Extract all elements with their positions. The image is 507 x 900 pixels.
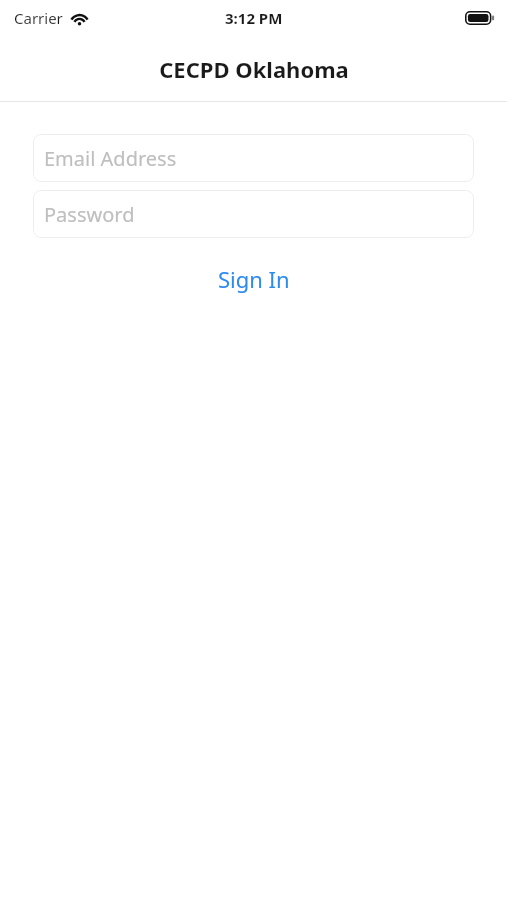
staticText: Sign In <box>218 264 290 294</box>
button[interactable]: Sign In <box>208 260 300 298</box>
staticText: Email Address <box>44 145 177 172</box>
button[interactable]: Password <box>33 190 474 238</box>
staticText: 3:12 PM <box>225 8 283 28</box>
button[interactable]: Email Address <box>33 134 474 182</box>
other: Wi-Fi signal <box>70 11 89 25</box>
staticText: Password <box>44 201 135 228</box>
staticText: CECPD Oklahoma <box>159 54 349 84</box>
other: Battery full <box>465 11 495 25</box>
staticText: Carrier <box>14 8 63 28</box>
